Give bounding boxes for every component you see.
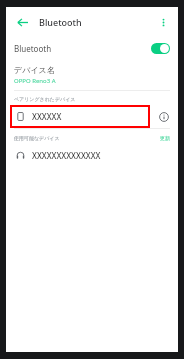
staticText: Bluetooth (14, 43, 52, 54)
staticText: デバイス名 (14, 65, 55, 75)
staticText: XXXXXXXXXXXXXX (32, 150, 101, 161)
staticText: OPPO Reno3 A (14, 77, 56, 85)
staticText: Bluetooth (39, 16, 82, 28)
staticText: XXXXXX (32, 111, 62, 122)
button[interactable]: Device settings (155, 108, 172, 125)
button[interactable]: XXXXXX (10, 105, 150, 128)
staticText: 使用可能なデバイス (14, 135, 60, 141)
button[interactable]: Bluetooth (6, 36, 178, 61)
button[interactable]: デバイス名 (6, 61, 178, 90)
button[interactable]: Back (13, 13, 31, 31)
staticText: 更新 (160, 135, 170, 141)
button[interactable]: XXXXXXXXXXXXXX (6, 144, 178, 166)
staticText: ペアリングされたデバイス (14, 96, 76, 102)
button[interactable]: 更新 (158, 134, 172, 142)
button[interactable]: More options (155, 14, 171, 30)
